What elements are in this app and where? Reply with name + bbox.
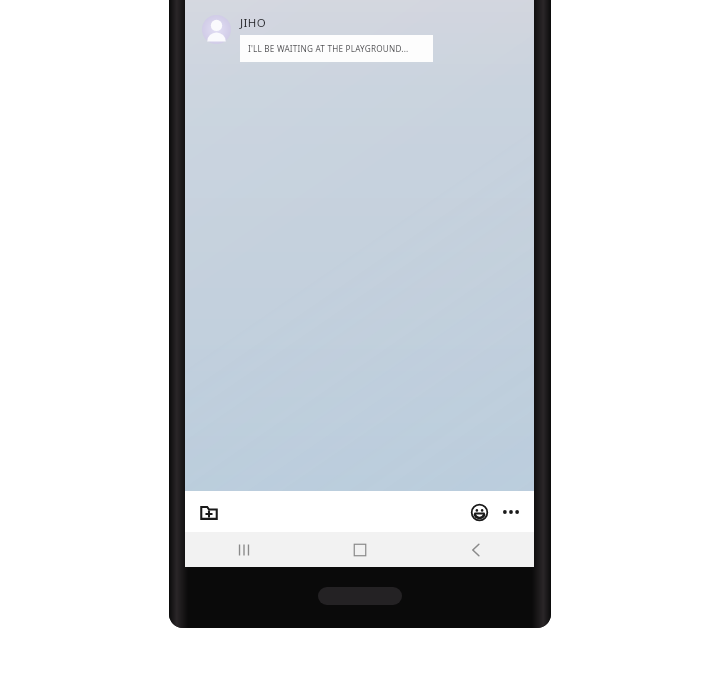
button[interactable]: Home [302, 532, 418, 567]
button[interactable]: Add attachment [196, 499, 222, 525]
button[interactable]: I'LL BE WAITING AT THE PLAYGROUND... [240, 35, 433, 62]
button[interactable]: Emoji [466, 499, 492, 525]
button[interactable]: Recent apps [185, 532, 302, 567]
staticText: JIHO [240, 15, 267, 31]
button[interactable]: Back [418, 532, 534, 567]
button[interactable]: Home key [318, 587, 402, 605]
staticText: I'LL BE WAITING AT THE PLAYGROUND... [248, 43, 409, 54]
button[interactable]: More options [498, 499, 524, 525]
